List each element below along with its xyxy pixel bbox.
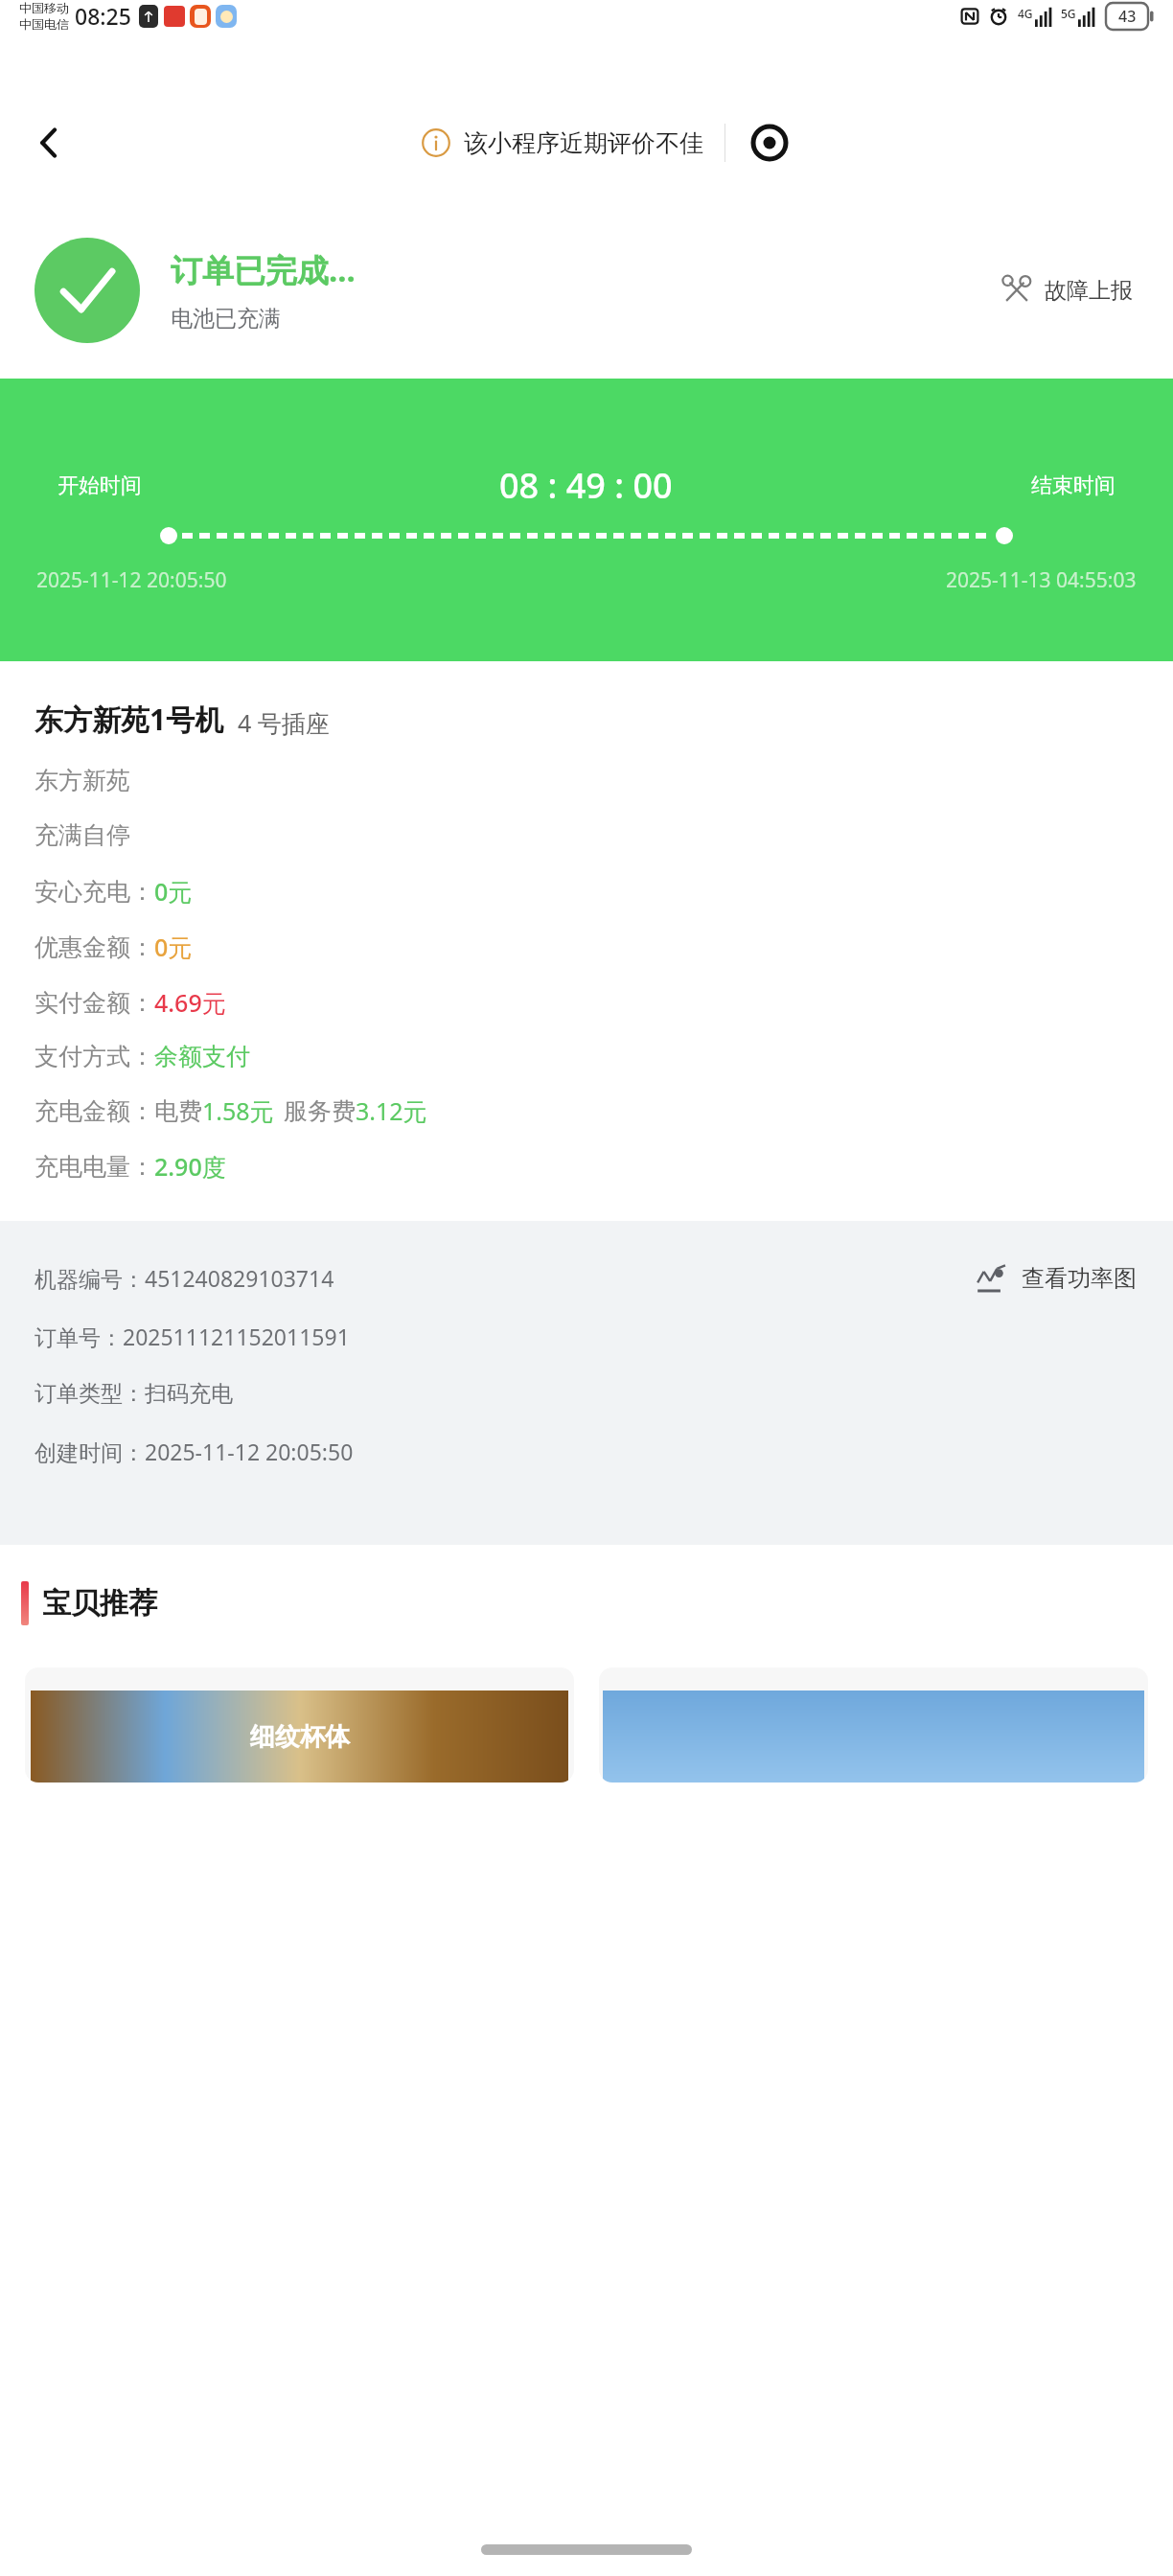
- staticText: 4G: [1018, 6, 1033, 21]
- staticText: 故障上报: [1045, 277, 1133, 305]
- staticText: 充电金额：: [34, 1096, 154, 1126]
- staticText: 宝贝推荐: [42, 1585, 157, 1621]
- staticText: 订单类型：扫码充电: [34, 1380, 233, 1408]
- staticText: 电池已充满: [171, 305, 281, 333]
- staticText: 安心充电：: [34, 877, 154, 907]
- button[interactable]: More: [745, 118, 794, 168]
- staticText: 0元: [154, 875, 193, 908]
- staticText: 订单号：202511121152011591: [34, 1322, 350, 1351]
- staticText: 服务费: [284, 1096, 356, 1126]
- staticText: 该小程序近期评价不佳: [464, 128, 703, 158]
- staticText: 2025-11-13 04:55:03: [946, 566, 1137, 594]
- staticText: 1.58元: [202, 1094, 274, 1127]
- staticText: 结束时间: [1031, 472, 1115, 499]
- staticText: 机器编号：451240829103714: [34, 1263, 334, 1293]
- staticText: 细纹杯体: [250, 1721, 350, 1753]
- button[interactable]: 查看功率图: [970, 1255, 1142, 1301]
- staticText: 充满自停: [34, 820, 130, 850]
- staticText: 创建时间：2025-11-12 20:05:50: [34, 1437, 354, 1466]
- staticText: 0元: [154, 931, 193, 963]
- staticText: 4.69元: [154, 986, 226, 1019]
- button[interactable]: Back: [19, 113, 79, 172]
- staticText: 电费: [154, 1096, 202, 1126]
- staticText: 查看功率图: [1022, 1264, 1137, 1293]
- staticText: 实付金额：: [34, 988, 154, 1018]
- staticText: 充电电量：: [34, 1152, 154, 1182]
- staticText: 余额支付: [154, 1042, 250, 1071]
- staticText: 08 : 49 : 00: [499, 462, 673, 509]
- staticText: 08:25: [75, 1, 131, 31]
- button[interactable]: 细纹杯体: [25, 1667, 574, 1782]
- staticText: 4 号插座: [238, 706, 330, 739]
- staticText: 3.12元: [356, 1094, 427, 1127]
- staticText: 东方新苑1号机: [34, 700, 224, 739]
- staticText: 43: [1118, 6, 1137, 27]
- staticText: 中国移动: [19, 0, 69, 15]
- staticText: 支付方式：: [34, 1042, 154, 1071]
- staticText: 中国电信: [19, 16, 69, 32]
- staticText: 东方新苑: [34, 766, 130, 795]
- button[interactable]: 该小程序近期评价不佳: [397, 104, 812, 181]
- staticText: 开始时间: [57, 472, 142, 499]
- staticText: 订单已完成...: [171, 248, 356, 291]
- button[interactable]: [599, 1667, 1148, 1782]
- staticText: 优惠金额：: [34, 932, 154, 962]
- staticText: 5G: [1061, 6, 1076, 21]
- staticText: 2.90度: [154, 1150, 226, 1183]
- button[interactable]: 故障上报: [995, 268, 1138, 312]
- staticText: 2025-11-12 20:05:50: [36, 566, 227, 594]
